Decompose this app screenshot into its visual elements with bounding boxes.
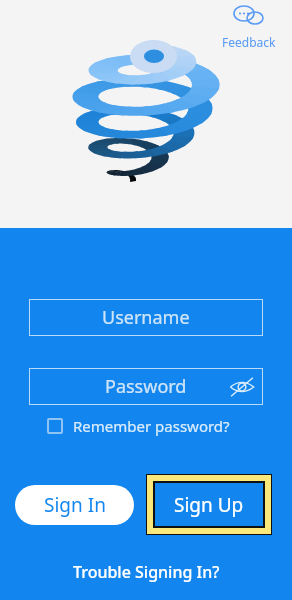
staticText: Remember password? — [73, 416, 230, 436]
other: Show password — [229, 376, 255, 398]
button[interactable]: Remember password? — [47, 416, 230, 436]
button[interactable]: Sign In — [15, 485, 134, 525]
staticText: Feedback — [222, 34, 276, 50]
button[interactable]: Username — [29, 299, 263, 336]
button[interactable]: Feedback — [222, 4, 276, 50]
staticText: Password — [105, 374, 187, 399]
staticText: Sign In — [44, 492, 106, 518]
staticText: Sign Up — [174, 492, 244, 518]
button[interactable]: Password — [29, 368, 263, 405]
button[interactable]: Sign Up — [155, 483, 263, 526]
button[interactable]: Trouble Signing In? — [73, 561, 220, 583]
staticText: Username — [102, 305, 190, 330]
